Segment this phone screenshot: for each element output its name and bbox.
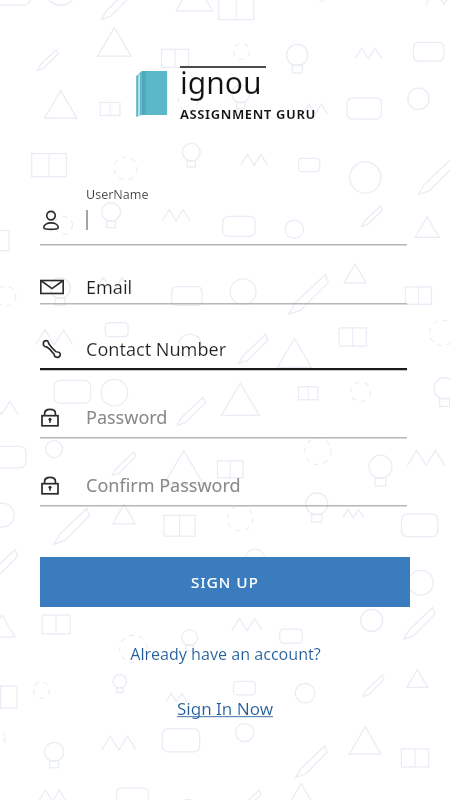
- staticText: Contact Number: [86, 337, 227, 362]
- button[interactable]: Password: [40, 470, 410, 500]
- staticText: ignou: [180, 62, 262, 103]
- button[interactable]: SIGN UP: [40, 557, 410, 607]
- staticText: Email: [86, 275, 133, 300]
- button[interactable]: Contact number: [40, 334, 410, 364]
- other: Email: [40, 278, 64, 296]
- other: Password: [40, 406, 60, 428]
- button[interactable]: Sign In Now: [165, 692, 286, 725]
- staticText: ASSIGNMENT GURU: [180, 105, 316, 123]
- staticText: UserName: [86, 186, 149, 203]
- other: User name: [40, 209, 62, 231]
- staticText: Sign In Now: [177, 697, 274, 720]
- button[interactable]: Password: [40, 402, 410, 432]
- staticText: Already have an account?: [130, 643, 321, 665]
- staticText: Password: [86, 405, 168, 430]
- button[interactable]: Already have an account?: [118, 638, 333, 670]
- staticText: SIGN UP: [191, 572, 259, 592]
- staticText: Confirm Password: [86, 473, 241, 498]
- other: Password: [40, 474, 60, 496]
- button[interactable]: Email: [40, 272, 410, 302]
- other: Contact number: [40, 338, 62, 360]
